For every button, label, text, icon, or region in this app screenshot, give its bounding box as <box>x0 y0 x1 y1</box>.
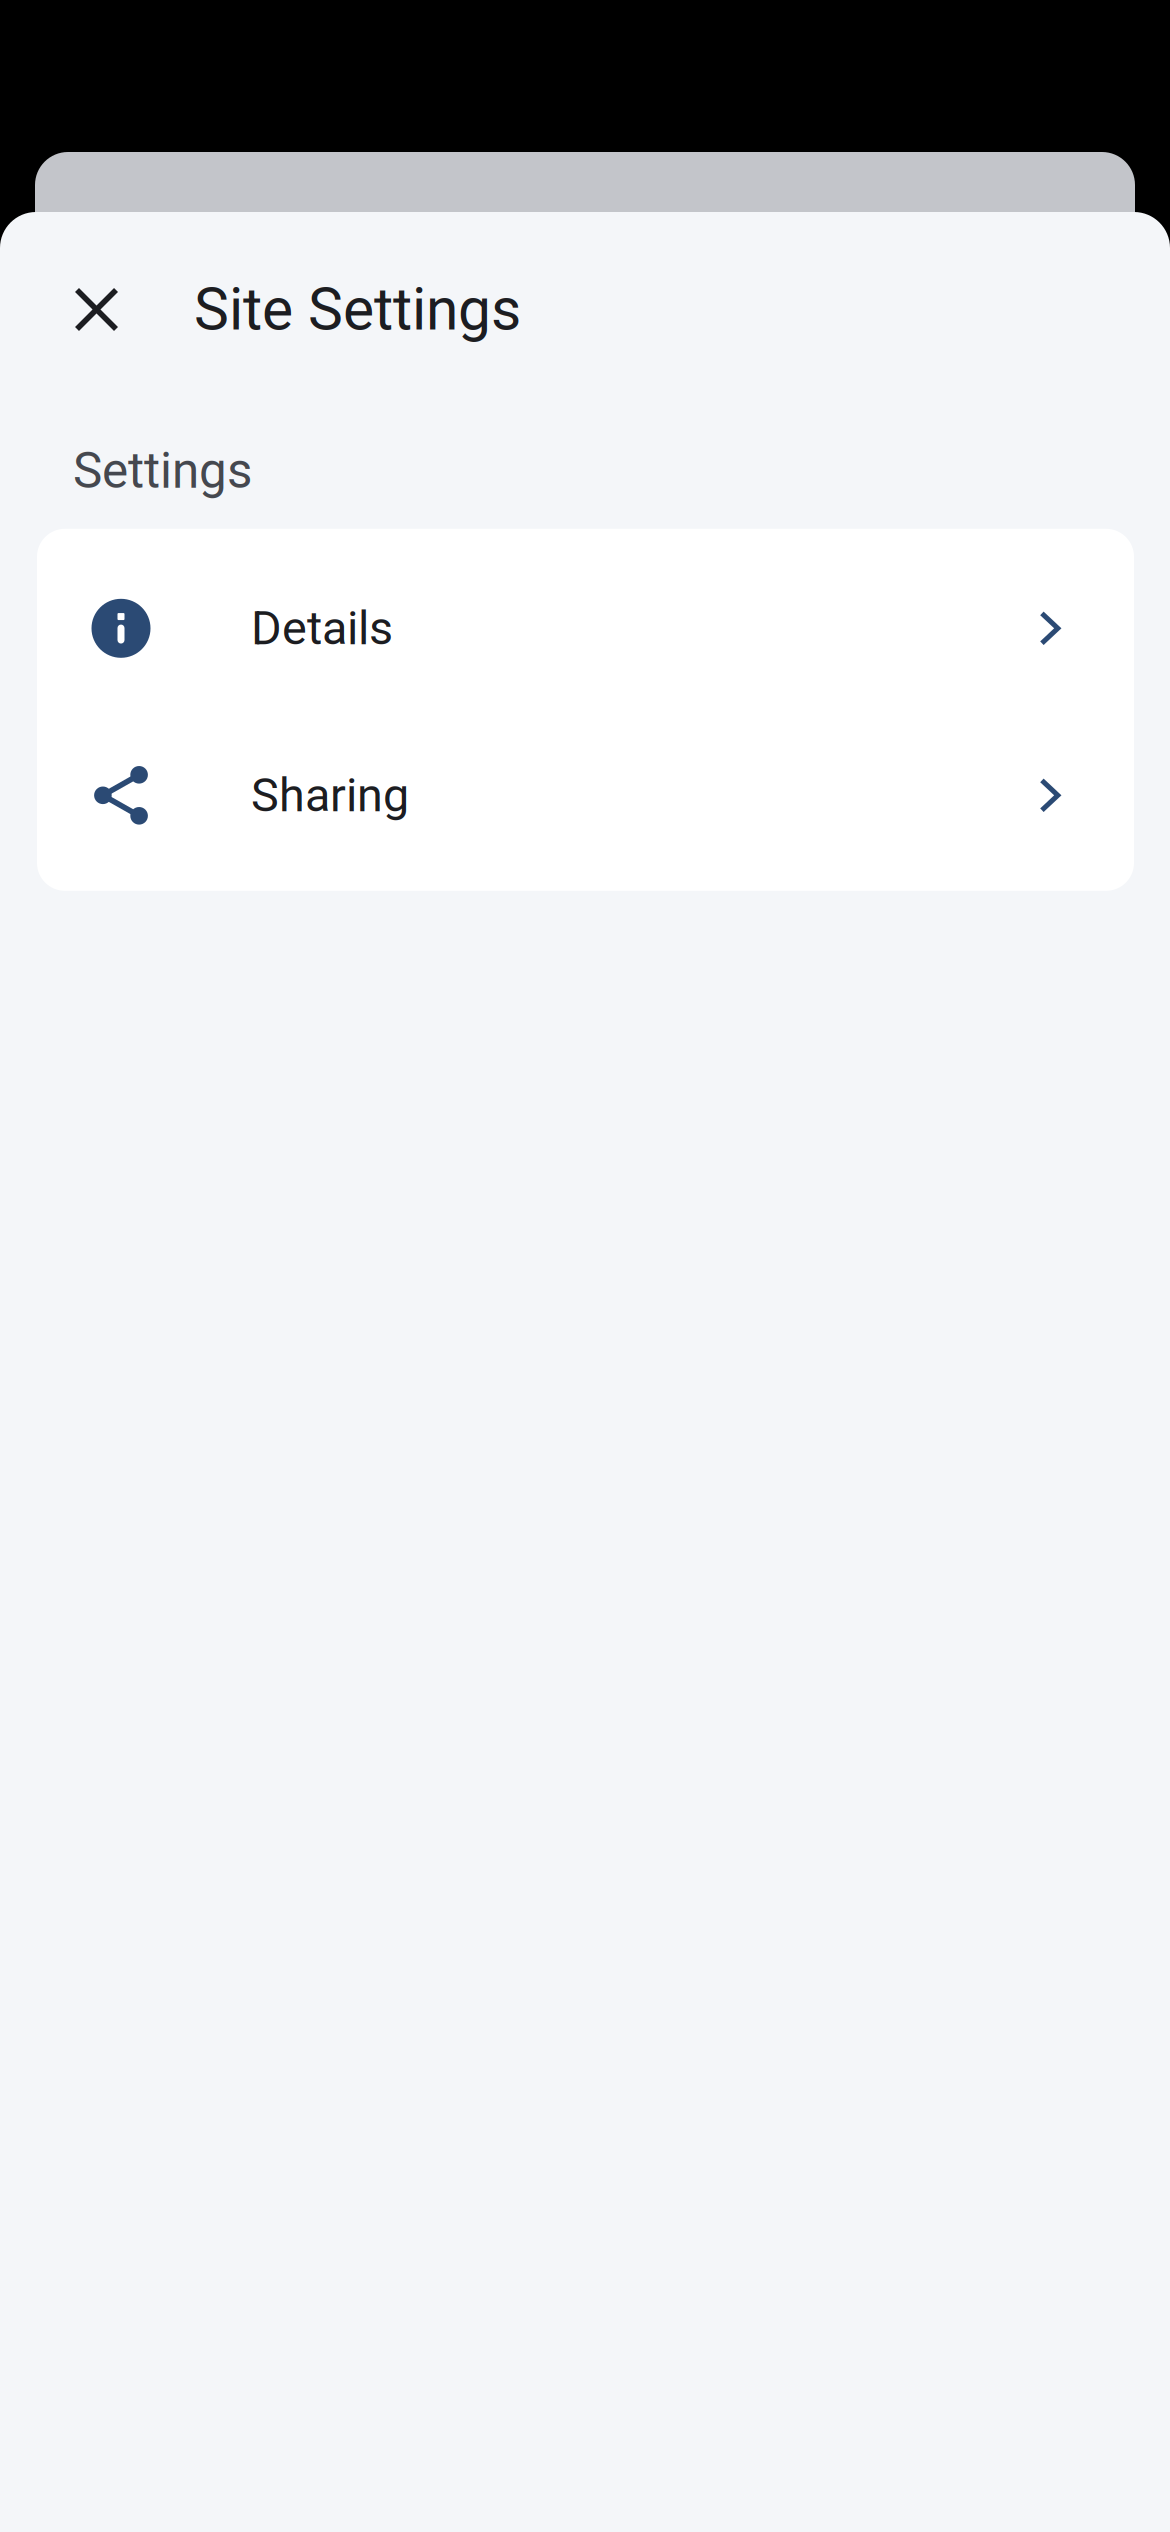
button[interactable]: Close <box>56 269 137 350</box>
staticText: Settings <box>73 442 252 500</box>
staticText: Site Settings <box>194 275 521 344</box>
staticText: Details <box>251 601 393 656</box>
button[interactable]: Details <box>37 545 1134 712</box>
button[interactable]: Sharing <box>37 712 1134 879</box>
staticText: Sharing <box>251 768 409 823</box>
